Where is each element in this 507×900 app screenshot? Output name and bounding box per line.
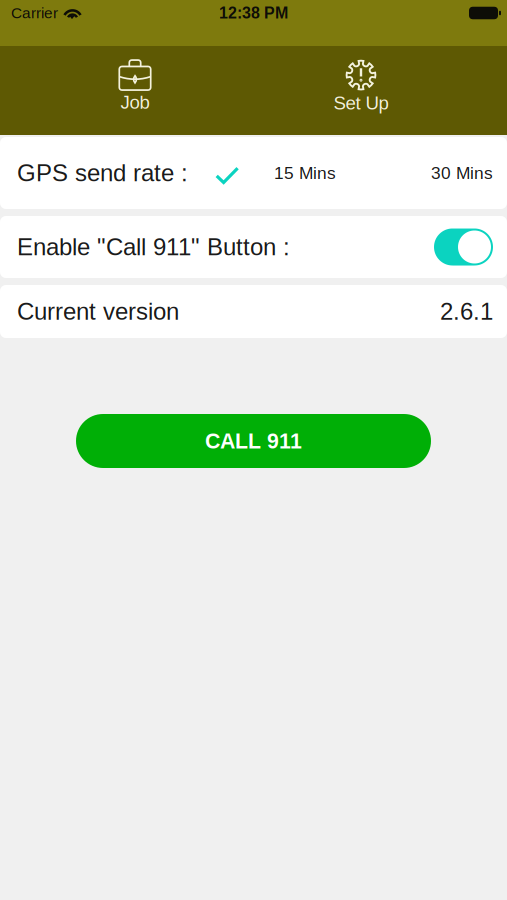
staticText: Set Up	[333, 93, 388, 113]
staticText: 15 Mins	[274, 163, 336, 183]
button[interactable]: Enable "Call 911" Button :	[0, 216, 507, 278]
staticText: 12:38 PM	[219, 4, 288, 22]
button[interactable]: CALL 911	[76, 414, 431, 468]
staticText: 2.6.1	[440, 298, 493, 325]
staticText: Enable "Call 911" Button :	[17, 234, 290, 260]
staticText: Carrier	[11, 4, 58, 21]
staticText: Current version	[17, 298, 179, 325]
staticText: GPS send rate :	[17, 160, 188, 186]
button[interactable]: Set Up	[248, 46, 474, 135]
staticText: 30 Mins	[431, 163, 493, 183]
staticText: Job	[120, 92, 149, 113]
button[interactable]: Job	[22, 46, 248, 135]
button[interactable]: GPS send rate :	[0, 137, 507, 209]
staticText: CALL 911	[205, 429, 302, 453]
